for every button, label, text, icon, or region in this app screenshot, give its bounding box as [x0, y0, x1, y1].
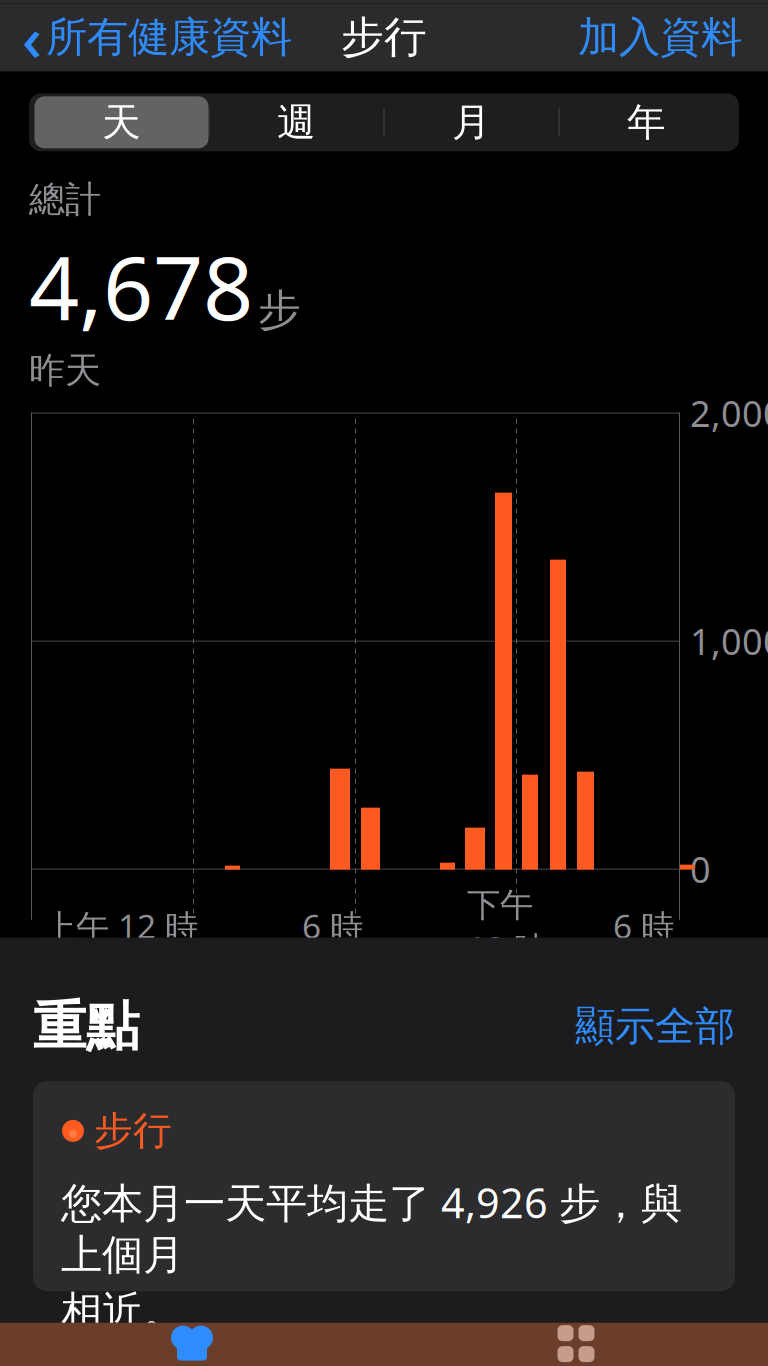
button[interactable]: 摘要	[0, 1323, 384, 1366]
staticText: 週	[277, 99, 316, 146]
button[interactable]: 加入資料	[578, 6, 768, 69]
staticText: 0	[690, 845, 711, 893]
staticText: 步行	[341, 11, 427, 63]
staticText: 顯示全部	[575, 1002, 735, 1051]
staticText: 昨天	[29, 348, 101, 393]
staticText: 1,000	[690, 617, 768, 665]
staticText: 步行	[94, 1107, 172, 1155]
button[interactable]: 月	[384, 96, 558, 148]
button[interactable]: 步行	[33, 1081, 735, 1291]
staticText: 總計	[29, 177, 101, 222]
staticText: 重點	[33, 994, 139, 1059]
button[interactable]: 顯示全部	[565, 996, 735, 1057]
staticText: 上午 12 時	[43, 904, 198, 948]
button[interactable]: 週	[209, 96, 383, 148]
staticText: 天	[102, 99, 141, 146]
staticText: ‹	[22, 0, 42, 78]
staticText: 6 時	[613, 904, 674, 948]
staticText: 步	[258, 284, 301, 336]
staticText: 下午 12 時	[467, 882, 547, 970]
staticText: 6 時	[302, 904, 363, 948]
staticText: 2,000	[690, 389, 768, 437]
button[interactable]: ‹	[0, 0, 292, 84]
staticText: 所有健康資料	[46, 12, 292, 63]
button[interactable]: 天	[34, 96, 208, 148]
staticText: 加入資料	[578, 12, 742, 63]
staticText: 4,678	[29, 228, 253, 344]
button[interactable]: 瀏覽	[384, 1323, 768, 1366]
staticText: 年	[627, 99, 666, 146]
staticText: 您本月一天平均走了 4,926 步，與上個月	[61, 1175, 682, 1280]
button[interactable]: 年	[559, 96, 733, 148]
staticText: 月	[452, 99, 491, 146]
staticText: 相近。	[61, 1286, 184, 1337]
